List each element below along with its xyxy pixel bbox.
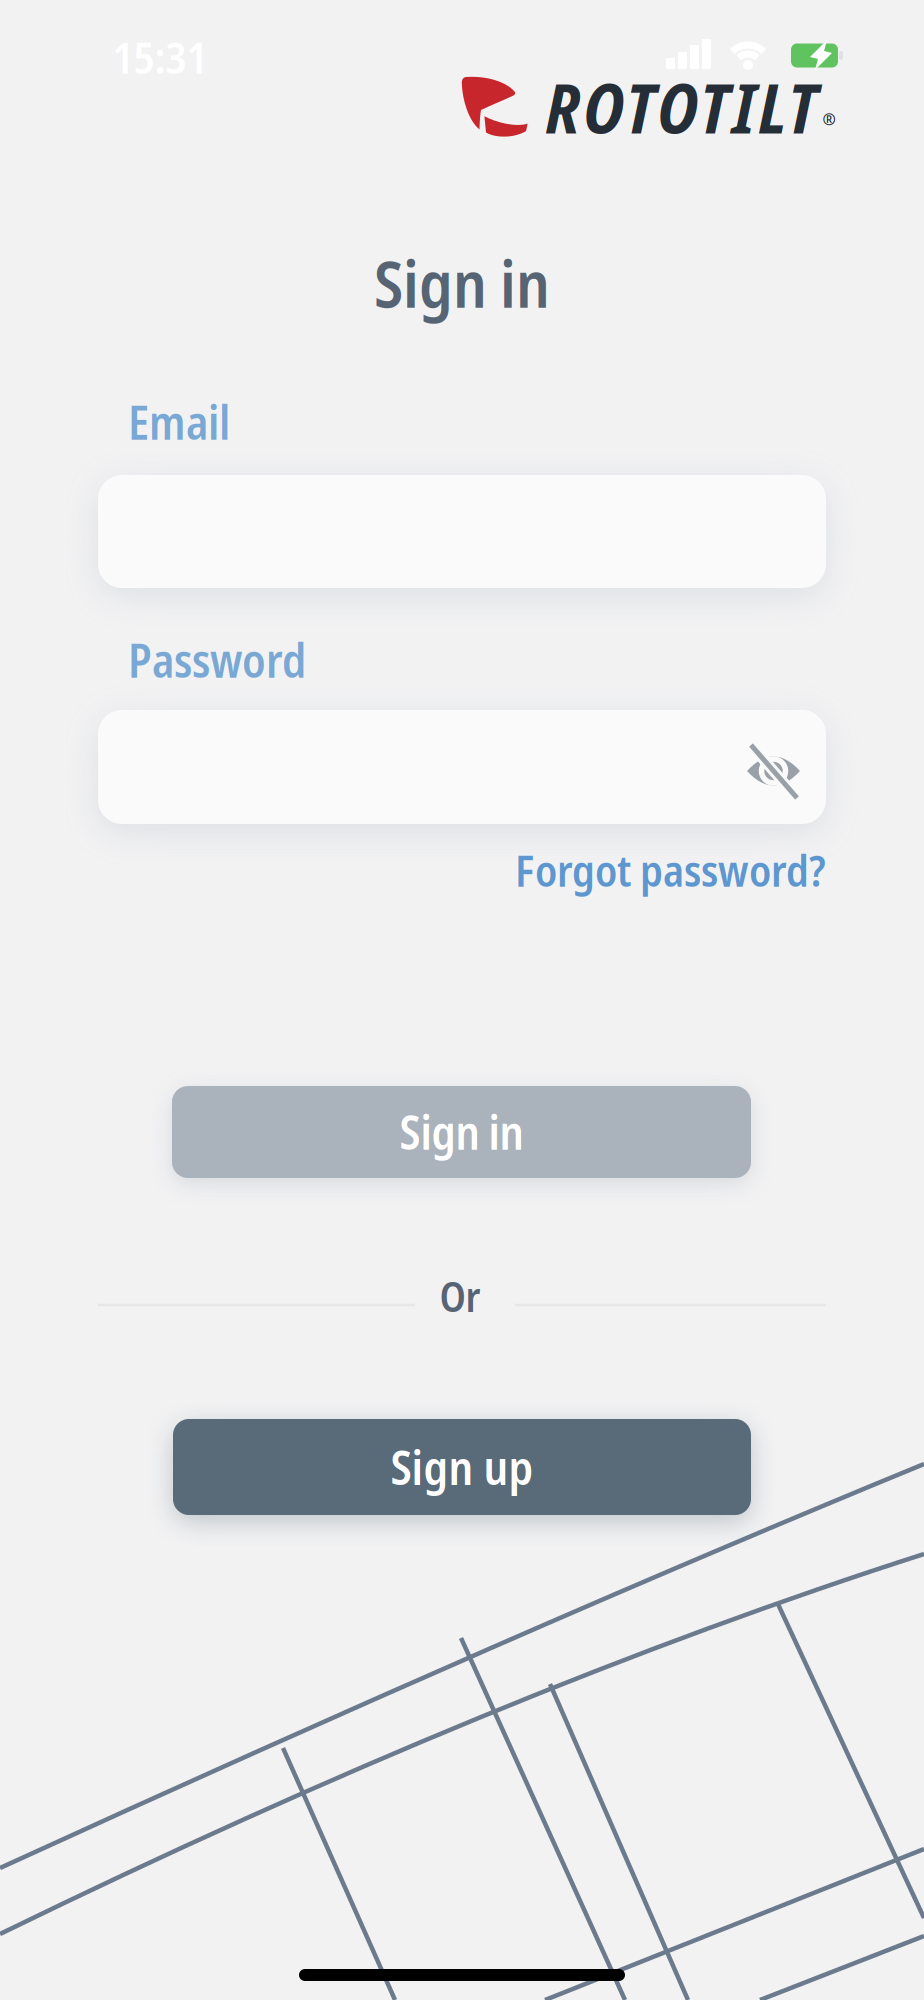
staticText: Email	[128, 391, 230, 453]
button[interactable]: Show password	[736, 734, 810, 808]
staticText: 15:31	[112, 27, 207, 86]
button[interactable]: Sign up	[173, 1419, 751, 1515]
staticText: ®	[822, 108, 835, 130]
staticText: ROTOTILT	[545, 61, 817, 153]
button[interactable]: Sign in	[172, 1086, 751, 1178]
button[interactable]: Forgot password?	[515, 840, 826, 899]
staticText: Password	[128, 629, 306, 691]
staticText: Or	[439, 1268, 480, 1324]
staticText: Sign in	[399, 1101, 523, 1163]
button[interactable]: Password	[98, 710, 826, 824]
staticText: Sign in	[374, 239, 550, 327]
staticText: Forgot password?	[515, 840, 826, 899]
staticText: Sign up	[390, 1435, 533, 1499]
